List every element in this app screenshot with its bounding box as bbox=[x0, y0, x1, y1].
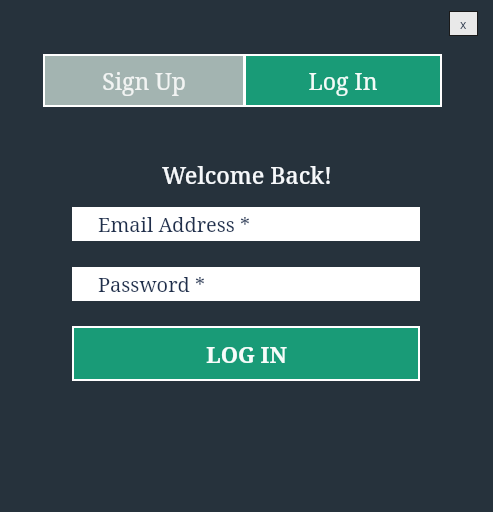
staticText: LOG IN bbox=[206, 339, 287, 369]
staticText: Welcome Back! bbox=[162, 159, 332, 190]
staticText: Sign Up bbox=[102, 65, 186, 96]
staticText: x bbox=[460, 16, 467, 32]
button[interactable]: Close bbox=[449, 11, 478, 36]
button[interactable]: Sign Up bbox=[45, 56, 243, 105]
staticText: Email Address * bbox=[98, 211, 251, 238]
button[interactable]: Email Address * bbox=[72, 207, 420, 241]
button[interactable]: Password * bbox=[72, 267, 420, 301]
button[interactable]: Log In bbox=[246, 56, 440, 105]
staticText: Log In bbox=[308, 65, 378, 96]
staticText: Password * bbox=[98, 271, 206, 298]
button[interactable]: LOG IN bbox=[74, 328, 418, 379]
